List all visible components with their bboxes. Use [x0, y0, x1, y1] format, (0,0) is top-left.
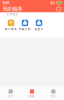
staticText: 常用服务	[6, 13, 18, 16]
staticText: 账户查询	[5, 27, 17, 31]
button[interactable]: 服务	[21, 89, 43, 98]
button[interactable]: Account	[56, 6, 61, 12]
button[interactable]: 信用卡	[32, 20, 46, 31]
staticText: 信用卡	[34, 27, 43, 31]
button[interactable]: 首页	[0, 89, 21, 98]
staticText: 服务	[29, 94, 35, 98]
staticText: 9:41	[2, 0, 9, 5]
staticText: 首页	[8, 94, 14, 98]
staticText: 我的	[50, 94, 56, 98]
button[interactable]: 转账汇款	[18, 20, 32, 31]
staticText: 4G	[50, 0, 55, 5]
button[interactable]: 账户查询	[4, 20, 18, 31]
staticText: 我的服务	[2, 6, 22, 12]
staticText: 转账汇款	[19, 27, 31, 31]
button[interactable]: 我的	[43, 89, 64, 98]
